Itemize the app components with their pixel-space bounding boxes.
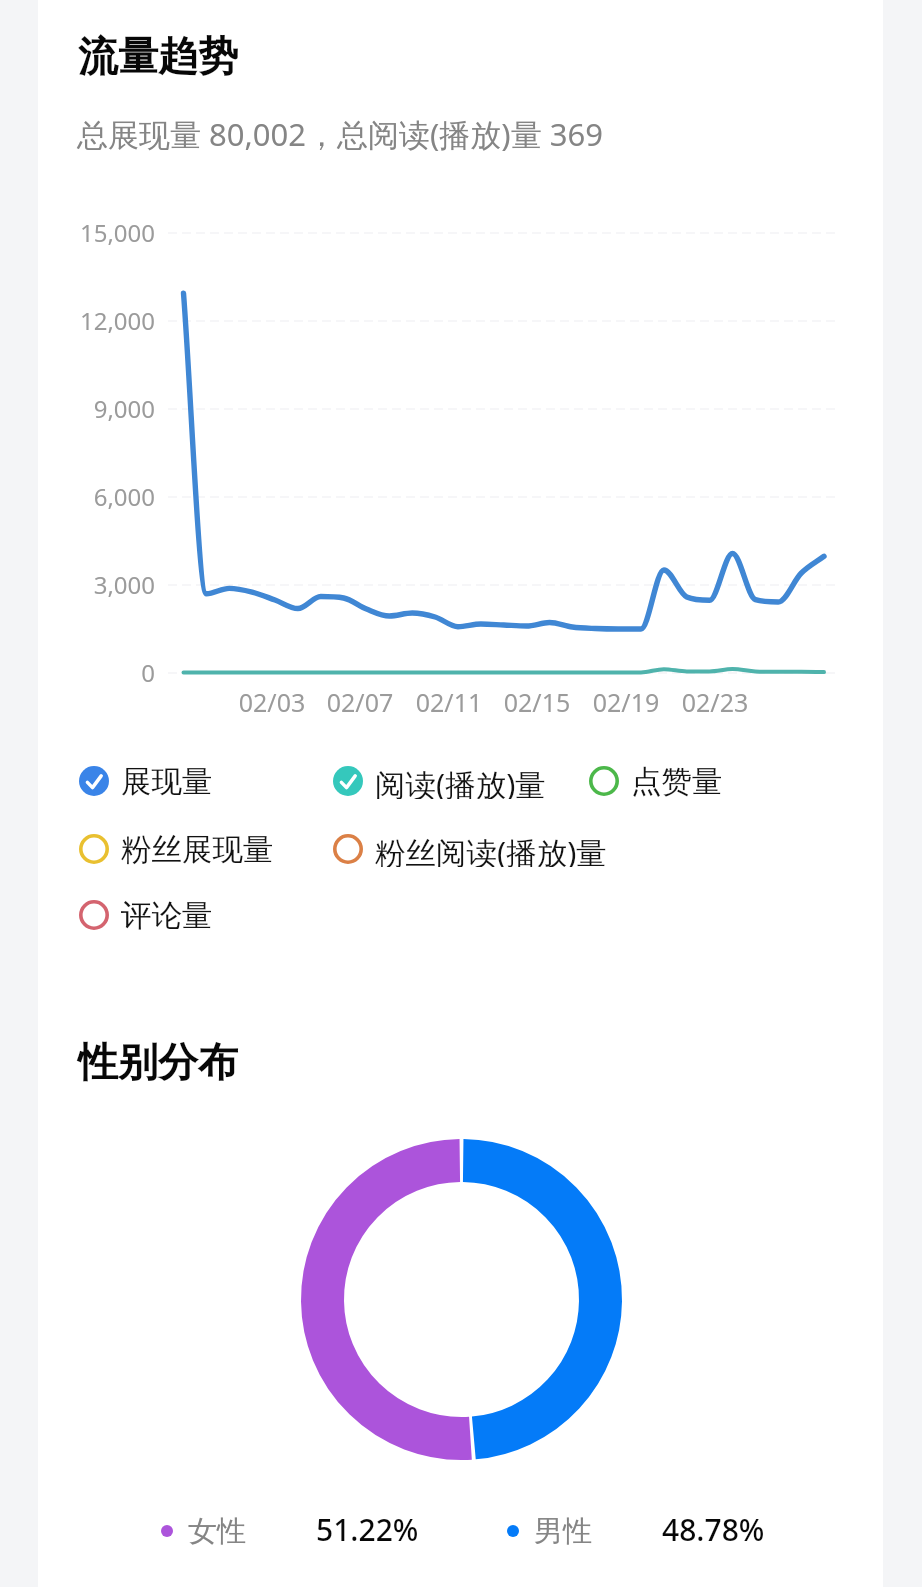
staticText: 粉丝展现量	[121, 831, 274, 867]
staticText: 02/19	[556, 685, 696, 719]
button[interactable]: 展现量	[79, 759, 213, 803]
staticText: 粉丝阅读(播放)量	[375, 831, 607, 867]
button[interactable]: 粉丝阅读(播放)量	[333, 827, 607, 871]
staticText: 流量趋势	[78, 31, 238, 81]
button[interactable]: 阅读(播放)量	[333, 759, 546, 803]
staticText: 51.22%	[316, 1509, 419, 1550]
staticText: 02/23	[645, 685, 785, 719]
staticText: 02/03	[202, 685, 342, 719]
staticText: 阅读(播放)量	[375, 763, 546, 799]
staticText: 15,000	[39, 216, 155, 249]
button[interactable]: 粉丝展现量	[79, 827, 274, 871]
button[interactable]: 女性	[161, 1506, 419, 1556]
staticText: 0	[39, 656, 155, 689]
button[interactable]: 点赞量	[589, 759, 723, 803]
button[interactable]: 男性	[507, 1506, 765, 1556]
staticText: 6,000	[39, 480, 155, 513]
staticText: 02/15	[467, 685, 607, 719]
staticText: 女性	[188, 1513, 246, 1550]
button[interactable]: 评论量	[79, 893, 213, 937]
staticText: 02/07	[290, 685, 430, 719]
staticText: 性别分布	[78, 1037, 238, 1087]
staticText: 02/11	[379, 685, 519, 719]
staticText: 3,000	[39, 568, 155, 601]
staticText: 男性	[534, 1513, 592, 1550]
staticText: 总展现量 80,002，总阅读(播放)量 369	[77, 113, 603, 155]
staticText: 9,000	[39, 392, 155, 425]
staticText: 12,000	[39, 304, 155, 337]
staticText: 点赞量	[631, 763, 723, 799]
staticText: 48.78%	[662, 1509, 765, 1550]
staticText: 评论量	[121, 897, 213, 933]
staticText: 展现量	[121, 763, 213, 799]
